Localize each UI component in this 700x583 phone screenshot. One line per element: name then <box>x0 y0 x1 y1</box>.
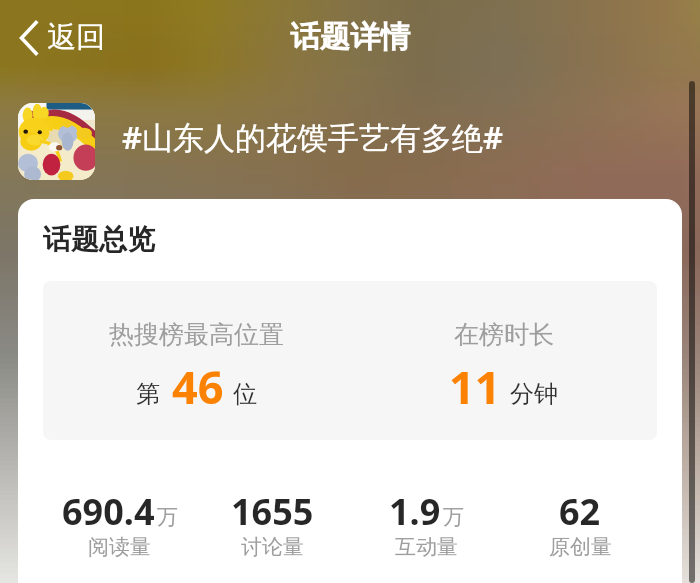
staticText: 万 <box>443 504 464 530</box>
staticText: 万 <box>157 504 178 530</box>
staticText: 第 <box>136 379 160 409</box>
staticText: 62 <box>559 487 601 536</box>
staticText: 1.9 <box>389 487 441 536</box>
staticText: 返回 <box>47 19 105 56</box>
staticText: 11 <box>449 356 501 417</box>
staticText: 1655 <box>231 487 314 536</box>
button[interactable]: Topic image <box>18 103 95 180</box>
button[interactable]: 返回 <box>14 13 109 62</box>
staticText: 位 <box>233 379 257 409</box>
staticText: #山东人的花馍手艺有多绝# <box>122 116 504 158</box>
staticText: 互动量 <box>395 534 458 560</box>
staticText: 分钟 <box>510 379 558 409</box>
staticText: 46 <box>172 356 224 417</box>
staticText: 热搜榜最高位置 <box>109 319 284 350</box>
staticText: 讨论量 <box>241 534 304 560</box>
staticText: 话题总览 <box>43 222 155 257</box>
staticText: 原创量 <box>549 534 612 560</box>
staticText: 690.4 <box>62 487 155 536</box>
staticText: 在榜时长 <box>454 319 554 350</box>
staticText: 阅读量 <box>88 534 151 560</box>
staticText: 话题详情 <box>290 18 410 56</box>
